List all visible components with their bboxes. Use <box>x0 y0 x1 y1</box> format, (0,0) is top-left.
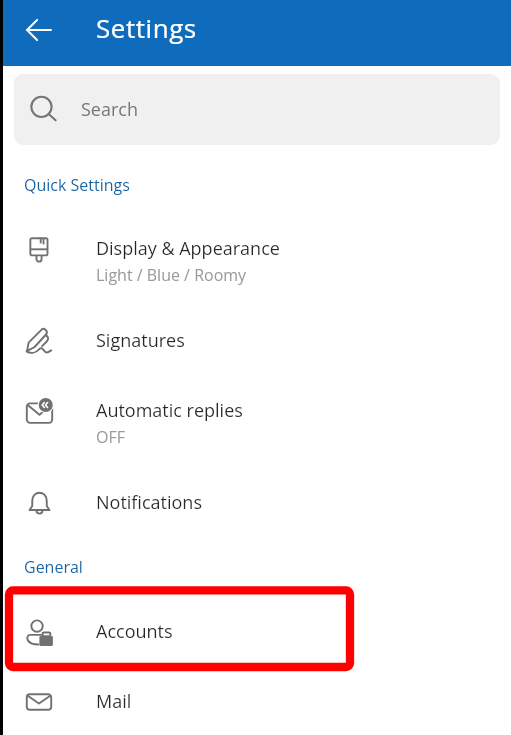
button[interactable]: Mail <box>0 667 511 735</box>
button[interactable]: Automatic replies <box>0 376 511 468</box>
staticText: Display & Appearance <box>96 236 280 261</box>
staticText: Search <box>81 97 138 122</box>
staticText: Automatic replies <box>96 398 243 423</box>
button[interactable]: Signatures <box>0 306 511 376</box>
staticText: OFF <box>96 426 125 448</box>
staticText: General <box>24 556 83 578</box>
staticText: Mail <box>96 689 132 714</box>
staticText: Light / Blue / Roomy <box>96 264 247 286</box>
staticText: Accounts <box>96 619 173 644</box>
button[interactable]: Back <box>15 6 63 54</box>
button[interactable]: Accounts <box>0 597 511 667</box>
staticText: Settings <box>96 10 197 45</box>
button[interactable]: Search <box>14 74 500 145</box>
staticText: Quick Settings <box>24 174 130 196</box>
staticText: Signatures <box>96 328 185 353</box>
button[interactable]: Notifications <box>0 468 511 538</box>
button[interactable]: Display & Appearance <box>0 214 511 306</box>
staticText: Notifications <box>96 490 202 515</box>
